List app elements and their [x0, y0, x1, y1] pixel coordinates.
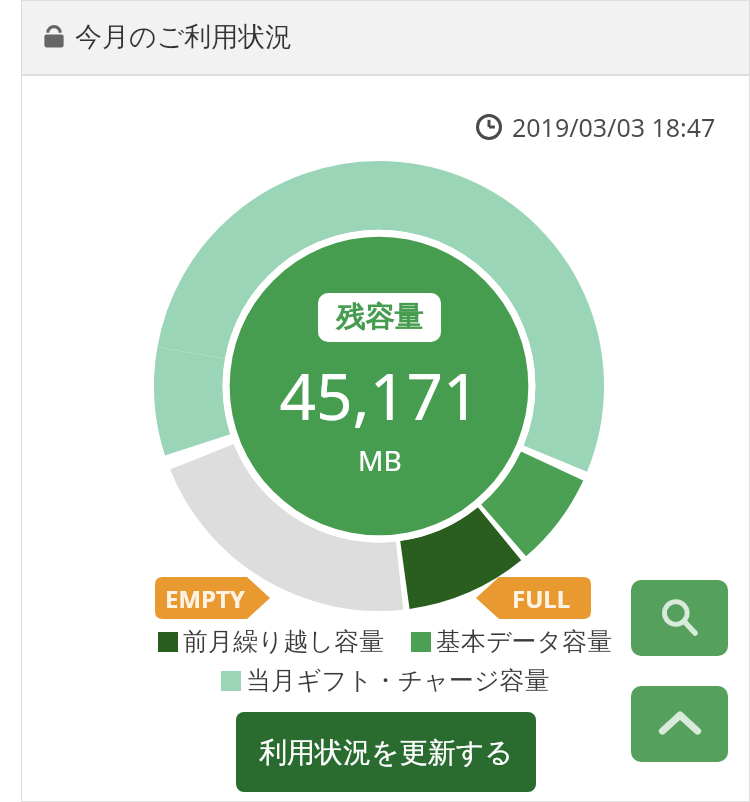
- button[interactable]: Search: [631, 580, 728, 656]
- button[interactable]: FULL: [476, 577, 591, 619]
- staticText: 利用状況を更新する: [259, 735, 513, 770]
- staticText: FULL: [512, 582, 571, 615]
- staticText: 前月繰り越し容量: [183, 626, 385, 657]
- staticText: 2019/03/03 18:47: [512, 110, 716, 144]
- staticText: 基本データ容量: [436, 626, 613, 657]
- staticText: 当月ギフト・チャージ容量: [246, 665, 550, 696]
- staticText: 今月のご利用状況: [75, 20, 293, 54]
- staticText: 45,171: [279, 352, 480, 439]
- button[interactable]: EMPTY: [155, 577, 270, 619]
- staticText: 残容量: [336, 299, 423, 336]
- staticText: MB: [358, 441, 402, 479]
- staticText: EMPTY: [165, 582, 245, 615]
- button[interactable]: Scroll to top: [631, 686, 728, 762]
- button[interactable]: 利用状況を更新する: [236, 712, 536, 792]
